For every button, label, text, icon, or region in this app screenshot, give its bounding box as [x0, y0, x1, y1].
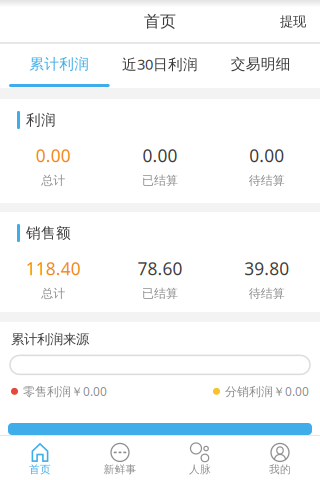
staticText: 78.60: [137, 257, 182, 280]
staticText: 销售额: [26, 224, 71, 242]
staticText: 累计利润来源: [11, 331, 89, 347]
staticText: 0.00: [142, 144, 177, 167]
staticText: 0.00: [249, 144, 284, 167]
staticText: 待结算: [249, 286, 285, 301]
staticText: 已结算: [142, 286, 178, 301]
button[interactable]: 交易明细: [210, 44, 311, 88]
staticText: 利润: [26, 111, 56, 129]
button[interactable]: 近30日利润: [110, 44, 210, 88]
button[interactable]: 新鲜事: [80, 436, 160, 480]
button[interactable]: [0, 423, 320, 435]
staticText: 首页: [29, 463, 51, 476]
staticText: 总计: [41, 173, 65, 188]
staticText: 已结算: [142, 173, 178, 188]
staticText: 分销利润￥0.00: [225, 383, 309, 399]
button[interactable]: 首页: [0, 436, 80, 480]
staticText: 我的: [269, 463, 291, 476]
button[interactable]: 提现: [280, 4, 320, 39]
staticText: 零售利润￥0.00: [23, 383, 107, 399]
staticText: 待结算: [249, 173, 285, 188]
staticText: 交易明细: [231, 55, 291, 73]
staticText: 人脉: [189, 463, 211, 476]
staticText: 首页: [144, 12, 176, 31]
staticText: 近30日利润: [122, 54, 198, 74]
staticText: 新鲜事: [103, 463, 136, 476]
staticText: 累计利润: [29, 55, 89, 73]
button[interactable]: 人脉: [160, 436, 240, 480]
staticText: 总计: [41, 286, 65, 301]
staticText: 39.80: [244, 257, 289, 280]
staticText: 提现: [280, 13, 306, 30]
staticText: 118.40: [26, 257, 81, 280]
staticText: 0.00: [36, 144, 71, 167]
button[interactable]: 累计利润: [9, 44, 110, 88]
button[interactable]: 我的: [240, 436, 320, 480]
